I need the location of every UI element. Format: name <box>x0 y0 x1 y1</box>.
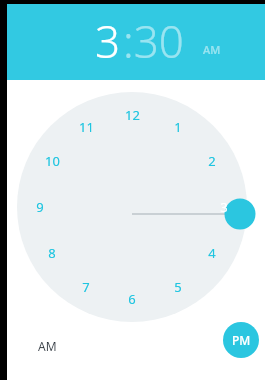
staticText: PM <box>232 332 251 348</box>
staticText: 2 <box>208 152 216 170</box>
staticText: 8 <box>48 244 56 262</box>
button[interactable]: AM <box>25 331 69 361</box>
staticText: 3 <box>220 198 228 216</box>
staticText: :30 <box>123 11 184 71</box>
staticText: 10 <box>45 152 60 170</box>
button[interactable]: 4 <box>198 243 226 263</box>
staticText: 11 <box>79 118 94 136</box>
button[interactable]: :30 <box>123 11 184 71</box>
button[interactable]: 3 <box>210 197 238 217</box>
button[interactable]: 1 <box>164 117 192 137</box>
staticText: 12 <box>125 106 140 124</box>
button[interactable]: 7 <box>72 277 100 297</box>
staticText: 3 <box>95 11 121 71</box>
staticText: 4 <box>208 244 216 262</box>
button[interactable]: 11 <box>72 117 100 137</box>
button[interactable]: 8 <box>38 243 66 263</box>
button[interactable]: 9 <box>26 197 54 217</box>
staticText: 1 <box>174 118 182 136</box>
button[interactable]: 3 <box>95 11 121 71</box>
staticText: 6 <box>128 290 136 308</box>
staticText: AM <box>203 42 221 57</box>
staticText: AM <box>38 338 57 354</box>
button[interactable]: AM <box>203 42 221 57</box>
staticText: 9 <box>36 198 44 216</box>
button[interactable]: 10 <box>38 151 66 171</box>
button[interactable]: PM <box>223 322 259 358</box>
staticText: 5 <box>174 278 182 296</box>
button[interactable]: 5 <box>164 277 192 297</box>
button[interactable]: 12 <box>118 105 146 125</box>
button[interactable]: 6 <box>118 289 146 309</box>
staticText: 7 <box>82 278 90 296</box>
button[interactable]: 2 <box>198 151 226 171</box>
